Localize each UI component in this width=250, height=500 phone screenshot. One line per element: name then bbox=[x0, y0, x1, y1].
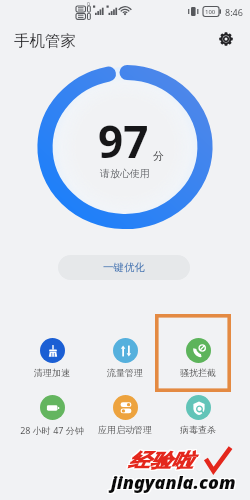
staticText: jingyanla.com bbox=[110, 469, 235, 494]
button[interactable]: 流量管理 bbox=[89, 338, 161, 378]
button[interactable]: 应用启动管理 bbox=[89, 395, 161, 435]
staticText: 请放心使用 bbox=[0, 167, 250, 180]
staticText: jingyanla.com bbox=[110, 470, 235, 495]
staticText: 经验啦 bbox=[127, 448, 192, 472]
staticText: 清理加速 bbox=[34, 367, 70, 378]
staticText: 经验啦 bbox=[129, 448, 194, 472]
staticText: 28 小时 47 分钟 bbox=[20, 424, 84, 436]
staticText: 分 bbox=[153, 149, 164, 163]
staticText: 经验啦 bbox=[128, 449, 193, 473]
staticText: 经验啦 bbox=[127, 450, 192, 474]
staticText: 100 bbox=[205, 8, 216, 16]
button[interactable]: 28 小时 47 分钟 bbox=[16, 395, 88, 436]
button[interactable]: 一键优化 bbox=[58, 255, 190, 280]
staticText: jingyanla.com bbox=[112, 471, 237, 496]
staticText: 0 bbox=[87, 1, 90, 8]
staticText: 手机管家 bbox=[14, 31, 76, 51]
staticText: 经验啦 bbox=[129, 449, 194, 473]
staticText: 应用启动管理 bbox=[98, 424, 152, 435]
staticText: jingyanla.com bbox=[112, 470, 237, 495]
staticText: 病毒查杀 bbox=[180, 424, 216, 435]
staticText: jingyanla.com bbox=[112, 469, 237, 494]
staticText: jingyanla.com bbox=[111, 470, 236, 495]
staticText: 经验啦 bbox=[129, 450, 194, 474]
staticText: jingyanla.com bbox=[111, 469, 236, 494]
button[interactable]: Settings bbox=[214, 27, 238, 51]
button[interactable]: 骚扰拦截 bbox=[162, 338, 234, 378]
staticText: jingyanla.com bbox=[111, 471, 236, 496]
button[interactable]: 清理加速 bbox=[16, 338, 88, 378]
staticText: 一键优化 bbox=[103, 261, 145, 274]
button[interactable]: 病毒查杀 bbox=[162, 395, 234, 435]
staticText: 骚扰拦截 bbox=[180, 367, 216, 378]
staticText: 经验啦 bbox=[127, 449, 192, 473]
staticText: 8:46 bbox=[225, 6, 243, 18]
staticText: 97 bbox=[98, 111, 149, 171]
staticText: 流量管理 bbox=[107, 367, 143, 378]
staticText: 经验啦 bbox=[128, 448, 193, 472]
staticText: 经验啦 bbox=[128, 450, 193, 474]
staticText: jingyanla.com bbox=[110, 471, 235, 496]
